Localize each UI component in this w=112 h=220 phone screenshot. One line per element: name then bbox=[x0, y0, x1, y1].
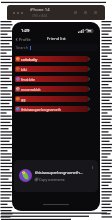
other: More options bbox=[91, 166, 94, 169]
button[interactable]: thisisasuperlongnameth… bbox=[14, 160, 98, 192]
staticText: iPhone 14 bbox=[30, 7, 50, 13]
other: Open friend bbox=[87, 97, 91, 101]
staticText: Friend list bbox=[47, 36, 66, 42]
staticText: 1:29 bbox=[21, 28, 30, 34]
staticText: gg bbox=[21, 97, 26, 102]
staticText: Profile bbox=[19, 37, 31, 42]
button[interactable]: Search bbox=[14, 44, 98, 51]
other: Open friend bbox=[87, 77, 91, 81]
other: Open friend bbox=[87, 87, 91, 91]
staticText: thisisasuperlongnameth… bbox=[35, 170, 83, 175]
other: Open friend bbox=[87, 107, 91, 111]
button[interactable]: cattobaby bbox=[12, 54, 100, 64]
button[interactable]: Profile bbox=[14, 36, 32, 43]
other: Open friend bbox=[87, 57, 91, 61]
button[interactable]: thisisasuperlongnameth bbox=[12, 104, 100, 114]
other: Open friend bbox=[87, 67, 91, 71]
staticText: moonrabbit bbox=[21, 87, 41, 92]
staticText: cattobaby bbox=[21, 57, 38, 62]
staticText: kiki bbox=[21, 67, 27, 72]
staticText: thisisasuperlongnameth bbox=[21, 107, 62, 112]
button[interactable]: kiki bbox=[12, 64, 100, 74]
staticText: Search bbox=[16, 45, 29, 50]
button[interactable]: moonrabbit bbox=[12, 84, 100, 94]
button[interactable]: gg bbox=[12, 94, 100, 104]
staticText: Copy username bbox=[39, 177, 65, 182]
staticText: 390 x 844 bbox=[32, 13, 48, 18]
staticText: frostbite bbox=[21, 77, 35, 82]
button[interactable]: frostbite bbox=[12, 74, 100, 84]
